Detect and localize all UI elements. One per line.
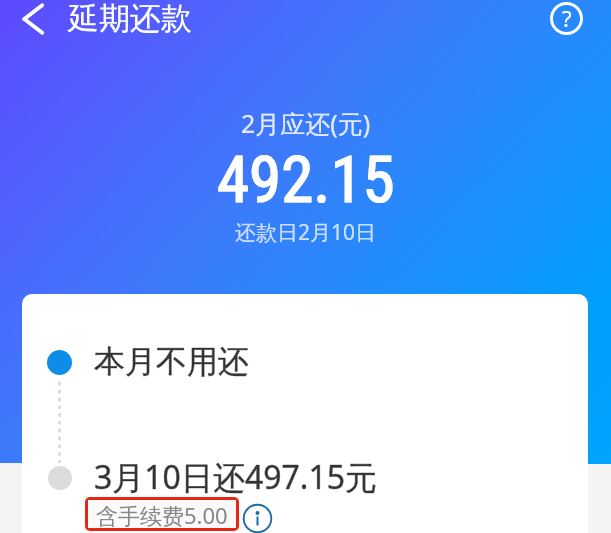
staticText: 本月不用还	[94, 342, 249, 381]
button[interactable]: Back	[0, 0, 66, 45]
staticText: 492.15	[217, 142, 395, 218]
staticText: 本月不用还	[94, 342, 249, 381]
staticText: 延期还款	[68, 0, 192, 38]
button[interactable]: Help	[543, 0, 591, 45]
staticText: 2月应还(元)	[241, 106, 371, 140]
staticText: 3月10日还497.15元	[94, 455, 378, 499]
staticText: 3月10日还497.15元	[94, 455, 378, 499]
button[interactable]: Info	[243, 504, 272, 533]
staticText: 492.15	[217, 142, 395, 218]
staticText: 含手续费5.00	[96, 500, 228, 528]
staticText: ?	[562, 3, 572, 33]
button[interactable]: 本月不用还	[22, 338, 588, 386]
staticText: 还款日2月10日	[235, 218, 377, 247]
button[interactable]: 3月10日还497.15元	[22, 456, 588, 533]
